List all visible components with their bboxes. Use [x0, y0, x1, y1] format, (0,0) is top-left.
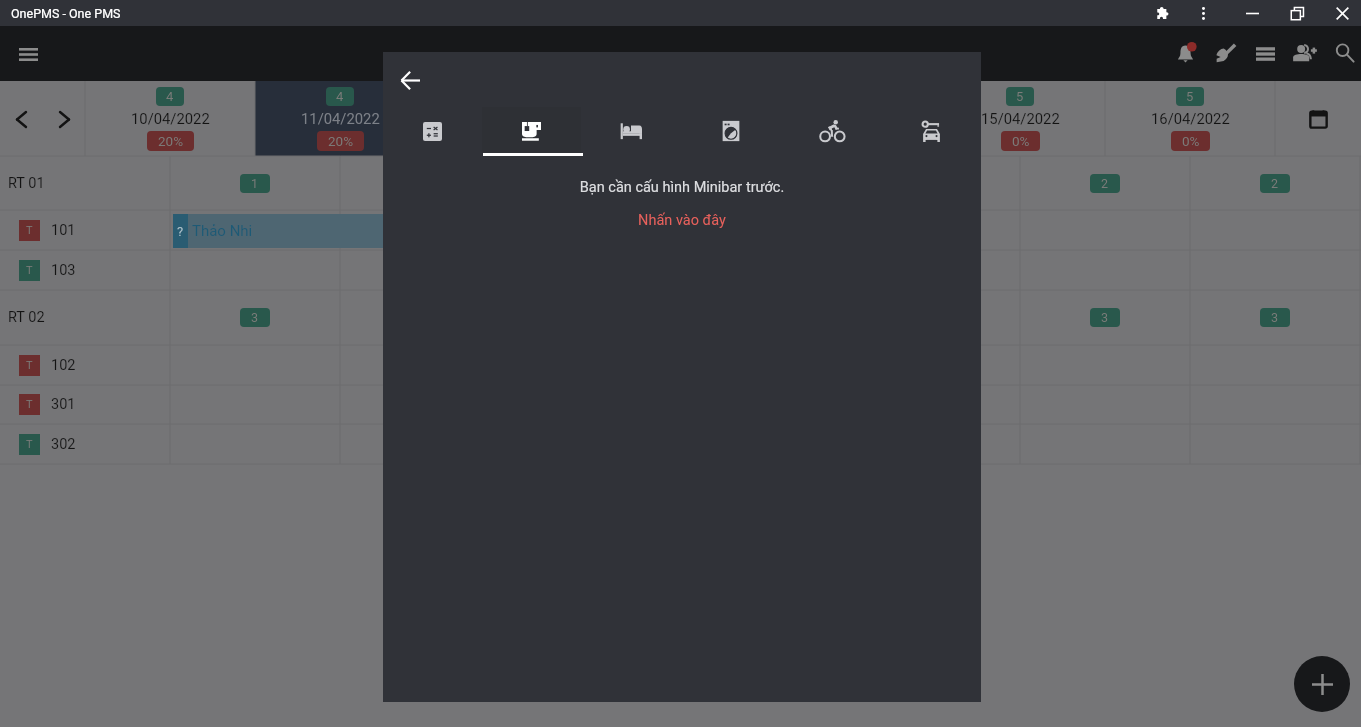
button[interactable]: ? [173, 214, 643, 248]
button[interactable]: Search [1325, 33, 1361, 73]
button[interactable]: RT 01 [0, 156, 170, 210]
button[interactable]: Previous days [7, 105, 35, 133]
button[interactable]: T [0, 250, 170, 290]
button[interactable]: T [0, 210, 170, 250]
button[interactable]: More options [1192, 2, 1214, 24]
button[interactable]: 5 [935, 81, 1105, 156]
staticText: 301 [51, 396, 76, 413]
button[interactable]: Next days [50, 105, 78, 133]
button[interactable]: Rooms [581, 107, 681, 155]
button[interactable]: 4 [595, 81, 765, 156]
button[interactable]: Maximize [1286, 2, 1308, 24]
button[interactable]: 4 [425, 81, 595, 156]
staticText: Bạn cần cấu hình Minibar trước. [383, 179, 981, 196]
button[interactable]: Car rental [881, 107, 981, 155]
staticText: ? [177, 224, 184, 239]
button[interactable]: Minibar [482, 107, 581, 155]
staticText: 103 [51, 262, 76, 279]
button: Back [383, 52, 981, 702]
button[interactable]: Open navigation menu [12, 38, 44, 70]
staticText: 20% [838, 133, 864, 149]
staticText: 4 [166, 89, 174, 104]
button[interactable]: Nhấn vào đây [383, 212, 981, 234]
staticText: 3 [1101, 310, 1109, 325]
staticText: 3 [1271, 310, 1279, 325]
staticText: 15/04/2022 [981, 110, 1060, 127]
staticText: 10/04/2022 [131, 110, 210, 127]
staticText: 16/04/2022 [1151, 110, 1230, 127]
staticText: RT 02 [8, 309, 45, 326]
button[interactable]: Notifications [1165, 33, 1205, 73]
button[interactable]: T [0, 385, 170, 424]
staticText: RT 01 [8, 175, 45, 192]
button[interactable]: 4 [85, 81, 255, 156]
button[interactable]: Charges [383, 107, 482, 155]
staticText: 4 [336, 89, 344, 104]
staticText: T [26, 264, 33, 277]
staticText: 20% [158, 133, 184, 149]
staticText: 0% [1182, 133, 1200, 149]
button[interactable]: T [0, 424, 170, 464]
button[interactable]: T [0, 345, 170, 385]
staticText: 3 [251, 310, 259, 325]
staticText: OnePMS - One PMS [11, 6, 121, 21]
staticText: 5 [1186, 89, 1194, 104]
button[interactable]: Extensions [1152, 2, 1174, 24]
staticText: 102 [51, 357, 76, 374]
button[interactable]: Add guest [1285, 33, 1325, 73]
button[interactable]: Minimize [1241, 2, 1263, 24]
button[interactable]: 4 [255, 81, 425, 156]
staticText: 302 [51, 436, 76, 453]
staticText: 101 [51, 222, 76, 239]
button[interactable]: 4 [765, 81, 935, 156]
button[interactable]: Add booking [1294, 656, 1350, 712]
staticText: 20% [328, 133, 354, 149]
button[interactable]: Housekeeping [1205, 33, 1245, 73]
button[interactable]: Laundry [681, 107, 781, 155]
staticText: T [26, 438, 33, 451]
staticText: 0% [1012, 133, 1030, 149]
staticText: T [26, 398, 33, 411]
button[interactable]: RT 02 [0, 290, 170, 345]
staticText: 11/04/2022 [301, 110, 380, 127]
button[interactable]: Bicycle rental [781, 107, 881, 155]
staticText: 1 [251, 176, 259, 191]
staticText: T [26, 224, 33, 237]
staticText: 2 [1271, 176, 1279, 191]
staticText: 14/04/2022 [811, 110, 890, 127]
button[interactable]: Room list [1245, 33, 1285, 73]
staticText: Nhấn vào đây [383, 212, 981, 229]
staticText: 2 [1101, 176, 1109, 191]
button[interactable]: Pick a date [1300, 101, 1336, 137]
button[interactable]: Back [392, 62, 428, 98]
button[interactable]: Close [1331, 2, 1353, 24]
staticText: 12/04/2022 [471, 110, 550, 127]
staticText: T [26, 359, 33, 372]
staticText: 5 [1016, 89, 1024, 104]
staticText: Thảo Nhi [192, 222, 253, 240]
staticText: 20% [498, 133, 524, 149]
button[interactable]: 5 [1105, 81, 1275, 156]
